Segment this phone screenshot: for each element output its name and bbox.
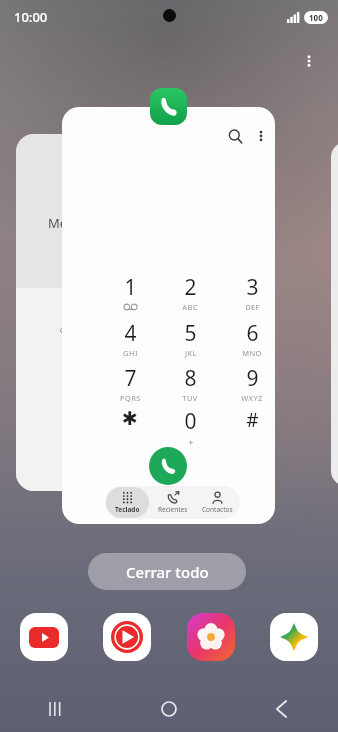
staticText: 6 [246, 319, 259, 348]
staticText: 1 [124, 273, 137, 302]
staticText: 7 [124, 364, 137, 393]
button[interactable]: Me [16, 134, 112, 491]
staticText: 8 [184, 364, 197, 393]
button[interactable]: 9 [230, 364, 274, 406]
button[interactable]: More options [246, 121, 275, 151]
staticText: 0 [184, 407, 197, 436]
staticText: 100 [309, 12, 323, 23]
button[interactable]: More options [296, 48, 322, 74]
staticText: Contactos [202, 505, 233, 514]
staticText: PQRS [120, 393, 141, 403]
staticText: DEF [245, 302, 260, 312]
button[interactable]: Teclado [106, 487, 149, 518]
button[interactable] [331, 142, 338, 486]
button[interactable]: 2 [168, 273, 212, 315]
staticText: WXYZ [241, 393, 263, 403]
staticText: 2 [184, 273, 197, 302]
staticText: 9 [246, 364, 259, 393]
button[interactable]: Recents [0, 686, 112, 732]
button[interactable]: Back [225, 686, 338, 732]
staticText: GHI [123, 348, 138, 358]
staticText: ✱ [122, 407, 138, 429]
button[interactable]: Gemini [268, 611, 320, 663]
staticText: Teclado [115, 505, 140, 514]
button[interactable]: Home [112, 686, 225, 732]
staticText: 10:00 [14, 8, 48, 26]
button[interactable]: 8 [168, 364, 212, 406]
button[interactable]: 5 [168, 319, 212, 361]
button[interactable]: 6 [230, 319, 274, 361]
button[interactable]: Phone app [150, 88, 187, 125]
button[interactable]: 7 [108, 364, 152, 406]
button[interactable]: Cerrar todo [88, 553, 246, 590]
staticText: + [188, 436, 194, 448]
button[interactable]: Recientes [151, 487, 194, 518]
button[interactable]: 1 [108, 273, 152, 315]
button[interactable]: Gallery [185, 611, 237, 663]
button[interactable]: Contactos [196, 487, 239, 518]
staticText: 4 [124, 319, 137, 348]
button[interactable]: 3 [230, 273, 274, 315]
staticText: c [60, 324, 64, 335]
button[interactable]: # [230, 407, 274, 449]
staticText: JKL [185, 348, 197, 358]
button[interactable]: Search [62, 107, 275, 524]
button[interactable]: YouTube [18, 611, 70, 663]
staticText: TUV [182, 393, 198, 403]
staticText: # [246, 407, 259, 433]
button[interactable]: 0 [168, 407, 212, 449]
staticText: Cerrar todo [126, 562, 209, 582]
button[interactable]: 4 [108, 319, 152, 361]
staticText: ABC [182, 302, 198, 312]
button[interactable]: Call [149, 447, 187, 485]
button[interactable]: Search [220, 121, 250, 151]
staticText: MNO [242, 348, 262, 358]
button[interactable]: ✱ [108, 407, 152, 449]
staticText: Me [48, 214, 68, 232]
button[interactable]: YouTube Music [101, 611, 153, 663]
staticText: 5 [184, 319, 197, 348]
staticText: Recientes [158, 505, 188, 514]
staticText: 3 [246, 273, 259, 302]
